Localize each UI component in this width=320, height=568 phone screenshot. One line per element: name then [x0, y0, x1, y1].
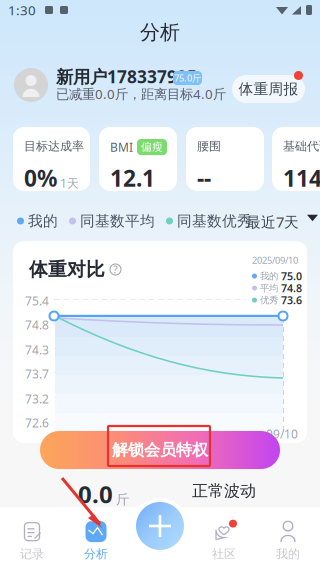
- staticText: 优秀: [260, 294, 278, 306]
- staticText: 平均: [260, 282, 278, 294]
- staticText: 目标达成率: [24, 139, 84, 154]
- staticText: 1:30: [8, 1, 36, 19]
- staticText: 我的: [260, 270, 278, 282]
- staticText: 09/10: [266, 426, 298, 442]
- staticText: --: [197, 163, 211, 193]
- staticText: 74.8: [281, 281, 302, 295]
- staticText: 2025/09/10: [252, 254, 298, 266]
- staticText: 72.6: [25, 415, 49, 431]
- staticText: 新用户178337995: [56, 65, 197, 88]
- button[interactable]: Add: [132, 498, 188, 554]
- button[interactable]: 体重周报: [232, 69, 305, 101]
- staticText: 同基数平均: [80, 212, 155, 230]
- staticText: 斤: [116, 491, 129, 508]
- button[interactable]: 分析: [68, 520, 124, 562]
- staticText: 基础代谢: [283, 139, 320, 154]
- staticText: 记录: [20, 547, 44, 561]
- staticText: 已减重0.0斤，距离目标4.0斤: [56, 85, 226, 103]
- staticText: 75.0: [281, 269, 302, 283]
- staticText: 1天: [60, 175, 79, 191]
- staticText: 腰围: [197, 139, 221, 154]
- button[interactable]: 记录: [4, 520, 60, 562]
- staticText: 最近7天: [246, 212, 299, 231]
- staticText: 我的: [28, 212, 58, 230]
- staticText: 73.6: [281, 293, 302, 307]
- staticText: 74.8: [25, 317, 49, 333]
- staticText: 75.0斤: [174, 72, 201, 84]
- staticText: 73.7: [25, 366, 49, 382]
- staticText: 解锁会员特权: [112, 440, 208, 460]
- button[interactable]: 最近7天: [246, 212, 318, 231]
- staticText: 我的: [276, 547, 300, 561]
- button[interactable]: 社区: [196, 520, 252, 562]
- staticText: 同基数优秀: [177, 212, 252, 230]
- staticText: 体重对比: [29, 258, 105, 281]
- staticText: 分析: [140, 20, 180, 45]
- staticText: 75.4: [25, 293, 49, 309]
- staticText: BMI: [110, 139, 133, 155]
- staticText: 0%: [24, 163, 57, 193]
- staticText: 12.1: [110, 163, 155, 193]
- staticText: 1141: [283, 163, 320, 193]
- staticText: 74.3: [25, 342, 49, 358]
- staticText: 分析: [84, 547, 108, 561]
- button[interactable]: 我的: [260, 520, 316, 562]
- staticText: 偏瘦: [141, 140, 163, 154]
- staticText: 正常波动: [192, 481, 256, 501]
- staticText: 73.2: [25, 391, 49, 407]
- staticText: 社区: [212, 547, 236, 561]
- button[interactable]: 解锁会员特权: [40, 431, 280, 469]
- staticText: ?: [113, 262, 118, 277]
- staticText: 体重周报: [238, 80, 298, 98]
- staticText: 0.0: [78, 478, 113, 510]
